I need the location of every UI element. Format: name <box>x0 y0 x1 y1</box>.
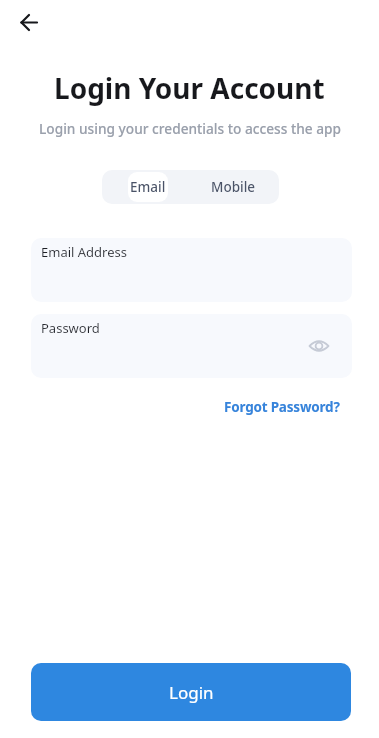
button[interactable] <box>17 10 43 36</box>
staticText: Login Your Account <box>54 69 325 107</box>
button[interactable]: Email <box>105 170 190 204</box>
button[interactable]: Password <box>31 314 352 378</box>
staticText: Email <box>130 178 166 196</box>
staticText: Mobile <box>211 178 256 196</box>
button[interactable]: Mobile <box>190 170 276 204</box>
staticText: Forgot Password? <box>224 398 340 416</box>
staticText: Email Address <box>41 243 127 261</box>
button[interactable] <box>307 334 331 358</box>
staticText: Login <box>169 681 214 704</box>
button[interactable]: Login <box>31 663 351 721</box>
button[interactable]: Forgot Password? <box>224 398 340 416</box>
staticText: Password <box>41 319 100 337</box>
staticText: Login using your credentials to access t… <box>39 119 341 138</box>
button[interactable]: Email Address <box>31 238 352 302</box>
